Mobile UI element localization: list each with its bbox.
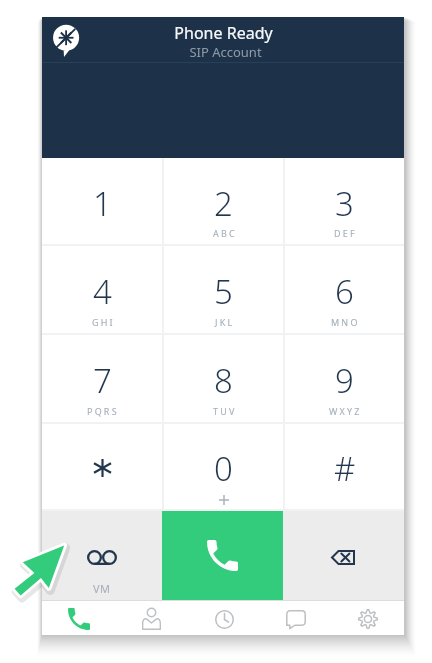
staticText: PQRS: [87, 405, 119, 417]
button[interactable]: Account: [53, 23, 81, 59]
button[interactable]: Backspace: [283, 511, 404, 600]
button[interactable]: Settings: [332, 601, 404, 635]
staticText: MNO: [331, 316, 360, 328]
staticText: 4: [93, 269, 112, 314]
staticText: WXYZ: [329, 405, 362, 417]
staticText: 6: [335, 269, 354, 314]
button[interactable]: 7: [42, 335, 162, 424]
button[interactable]: 4: [42, 246, 162, 335]
button[interactable]: 5: [164, 246, 283, 335]
staticText: 5: [214, 269, 233, 314]
button[interactable]: #: [285, 424, 404, 511]
staticText: SIP Account: [189, 43, 262, 61]
staticText: 7: [93, 358, 112, 403]
staticText: ABC: [213, 227, 237, 239]
button[interactable]: Contacts: [115, 601, 188, 635]
staticText: JKL: [215, 316, 235, 328]
button[interactable]: 9: [285, 335, 404, 424]
staticText: 1: [93, 181, 112, 226]
button[interactable]: [42, 424, 162, 511]
button[interactable]: Keypad: [42, 601, 115, 635]
button[interactable]: Recents: [188, 601, 260, 635]
staticText: 2: [214, 181, 233, 226]
staticText: VM: [93, 581, 111, 596]
staticText: 8: [214, 358, 233, 403]
staticText: GHI: [92, 316, 115, 328]
staticText: 3: [335, 181, 354, 226]
staticText: TUV: [213, 405, 237, 417]
staticText: 9: [335, 358, 354, 403]
staticText: DEF: [334, 227, 357, 239]
button[interactable]: VM: [42, 511, 162, 600]
button[interactable]: 8: [164, 335, 283, 424]
button[interactable]: Call: [162, 511, 283, 600]
button[interactable]: Messages: [260, 601, 332, 635]
staticText: 0: [214, 446, 233, 491]
button[interactable]: 2: [164, 158, 283, 246]
button[interactable]: 1: [42, 158, 162, 246]
button[interactable]: 3: [285, 158, 404, 246]
button[interactable]: 6: [285, 246, 404, 335]
button[interactable]: 0: [164, 424, 283, 511]
staticText: Phone Ready: [174, 22, 273, 44]
staticText: #: [334, 446, 356, 491]
